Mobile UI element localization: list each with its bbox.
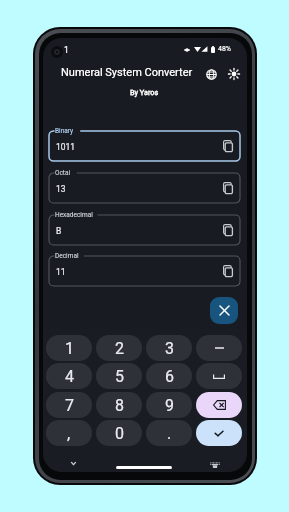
button[interactable]: 8 [96,392,142,418]
button[interactable]: Clear [210,297,238,324]
staticText: 2 [115,339,124,358]
staticText: Hexadecimal [55,211,93,219]
button[interactable]: Hexadecimal [49,215,240,245]
button[interactable]: Hide keyboard [66,456,80,470]
button[interactable]: 1 [46,335,92,361]
button[interactable]: Octal [49,173,240,203]
staticText: B [56,226,62,236]
staticText: 6 [165,367,174,386]
staticText: By Yaros [130,88,159,97]
staticText: 11 [56,267,66,277]
staticText: 9 [165,396,174,415]
staticText: 1 [64,45,69,55]
staticText: . [167,424,172,443]
staticText: 1 [65,339,74,358]
button[interactable]: 3 [146,335,192,361]
button[interactable]: Toggle theme [227,67,241,81]
staticText: 48% [218,45,231,53]
staticText: 7 [65,396,74,415]
button[interactable]: . [146,420,192,446]
button[interactable]: Copy Octal [220,180,236,196]
button[interactable]: Enter [196,420,242,446]
staticText: Decimal [55,252,79,260]
button[interactable]: Copy Decimal [220,263,236,279]
button[interactable]: Backspace [196,392,242,418]
button[interactable]: Copy Hexadecimal [220,222,236,238]
button[interactable]: 5 [96,363,142,389]
button[interactable]: 9 [146,392,192,418]
staticText: 13 [56,184,66,194]
button[interactable]: Decimal [49,256,240,286]
staticText: Binary [55,127,74,135]
staticText: Octal [55,169,71,177]
button[interactable]: 7 [46,392,92,418]
button[interactable]: , [46,420,92,446]
button[interactable]: Copy Binary [220,138,236,154]
staticText: 3 [165,339,174,358]
staticText: Numeral System Converter [61,66,193,79]
staticText: 1011 [56,142,76,152]
button[interactable]: Change language [204,67,218,81]
button[interactable]: 4 [46,363,92,389]
staticText: 4 [65,367,74,386]
button[interactable]: Switch keyboard [208,459,222,470]
staticText: 8 [115,396,124,415]
button[interactable]: Minus [196,335,242,361]
staticText: 0 [115,424,124,443]
button[interactable]: 2 [96,335,142,361]
button[interactable]: 0 [96,420,142,446]
staticText: , [67,424,71,443]
button[interactable]: 6 [146,363,192,389]
button[interactable]: Binary [49,131,240,161]
button[interactable]: Space [196,363,242,389]
staticText: 5 [115,367,124,386]
